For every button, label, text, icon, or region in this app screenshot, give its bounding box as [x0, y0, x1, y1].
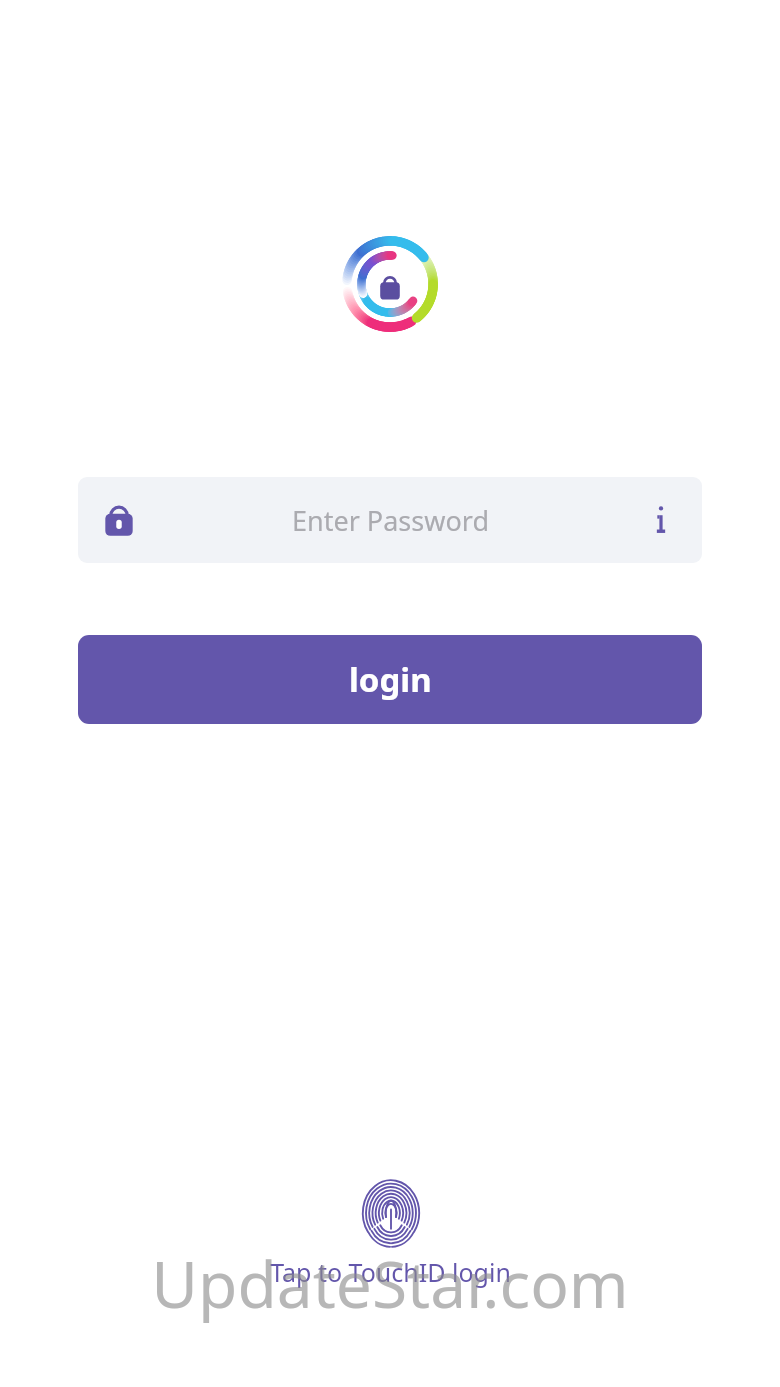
staticText: UpdateStar.com — [151, 1240, 629, 1327]
button[interactable]: Enter Password — [78, 477, 702, 563]
button[interactable]: Tap to TouchID login — [230, 1171, 551, 1295]
staticText: login — [349, 657, 432, 702]
button[interactable]: login — [78, 635, 702, 724]
button[interactable]: Password information — [642, 501, 680, 539]
staticText: Tap to TouchID login — [270, 1255, 511, 1289]
staticText: Enter Password — [292, 502, 489, 539]
